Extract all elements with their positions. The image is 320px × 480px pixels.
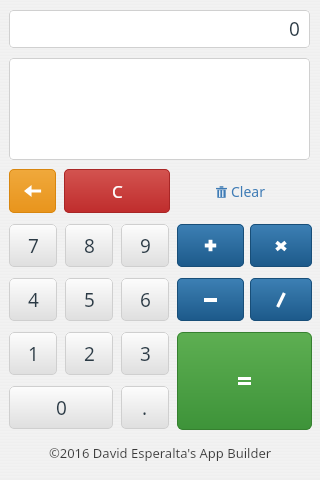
- staticText: Clear: [231, 182, 265, 201]
- button[interactable]: 4: [9, 278, 57, 321]
- staticText: 5: [84, 287, 95, 313]
- staticText: 3: [140, 341, 151, 367]
- button[interactable]: 2: [65, 332, 113, 375]
- button[interactable]: 0: [9, 10, 310, 48]
- button[interactable]: .: [121, 386, 169, 429]
- staticText: 8: [84, 233, 95, 259]
- button[interactable]: 7: [9, 224, 57, 267]
- staticText: 9: [140, 233, 151, 259]
- staticText: C: [112, 180, 123, 203]
- staticText: ©2016 David Esperalta's App Builder: [0, 444, 320, 462]
- button[interactable]: Multiply: [250, 224, 312, 267]
- button[interactable]: 8: [65, 224, 113, 267]
- staticText: 4: [28, 287, 39, 313]
- button[interactable]: Clear: [212, 178, 269, 205]
- staticText: 7: [28, 233, 39, 259]
- staticText: 1: [28, 341, 39, 367]
- other: Divide: [275, 292, 287, 308]
- button[interactable]: Plus: [177, 224, 244, 267]
- button[interactable]: Backspace: [9, 169, 56, 213]
- button[interactable]: C: [64, 169, 170, 213]
- other: Multiply: [275, 240, 287, 252]
- staticText: 6: [140, 287, 151, 313]
- button[interactable]: Divide: [250, 278, 312, 321]
- button[interactable]: 6: [121, 278, 169, 321]
- staticText: 0: [289, 16, 300, 42]
- staticText: 2: [84, 341, 95, 367]
- button[interactable]: [9, 58, 310, 160]
- button[interactable]: Equals: [177, 332, 312, 430]
- button[interactable]: 5: [65, 278, 113, 321]
- button[interactable]: 9: [121, 224, 169, 267]
- staticText: .: [142, 395, 148, 421]
- button[interactable]: 0: [9, 386, 113, 429]
- staticText: 0: [56, 395, 67, 421]
- button[interactable]: 3: [121, 332, 169, 375]
- button[interactable]: Minus: [177, 278, 244, 321]
- other: Plus: [204, 239, 217, 252]
- other: Equals: [238, 376, 251, 386]
- button[interactable]: 1: [9, 332, 57, 375]
